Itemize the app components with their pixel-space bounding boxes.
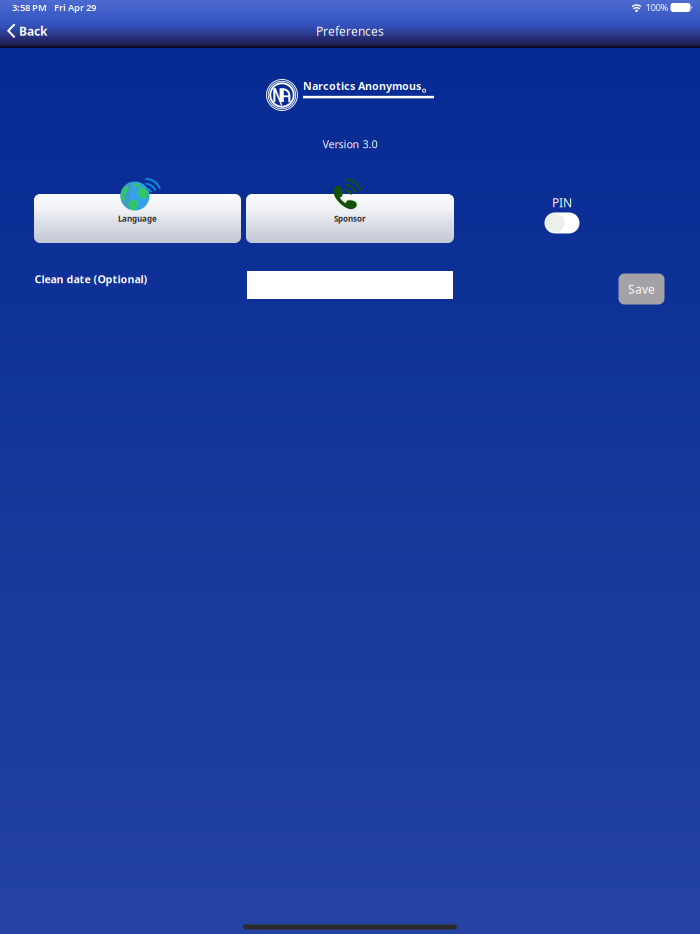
staticText: 3:58 PM [12, 1, 47, 14]
staticText: Back [19, 23, 47, 39]
button[interactable]: PIN toggle [544, 212, 579, 233]
button[interactable]: Save [618, 273, 664, 304]
button[interactable]: Sponsor [246, 194, 454, 243]
staticText: Sponsor [334, 213, 366, 224]
staticText: Preferences [316, 23, 384, 39]
staticText: Language [118, 213, 157, 224]
staticText: Version 3.0 [322, 137, 377, 151]
button[interactable]: Language [34, 194, 241, 243]
staticText: Narcotics Anonymous [303, 79, 421, 93]
staticText: PIN [552, 194, 572, 210]
staticText: 100% [645, 1, 668, 14]
button[interactable]: Back [0, 14, 57, 43]
staticText: Clean date (Optional) [34, 272, 147, 286]
staticText: Fri Apr 29 [54, 1, 96, 14]
staticText: Save [628, 281, 655, 297]
